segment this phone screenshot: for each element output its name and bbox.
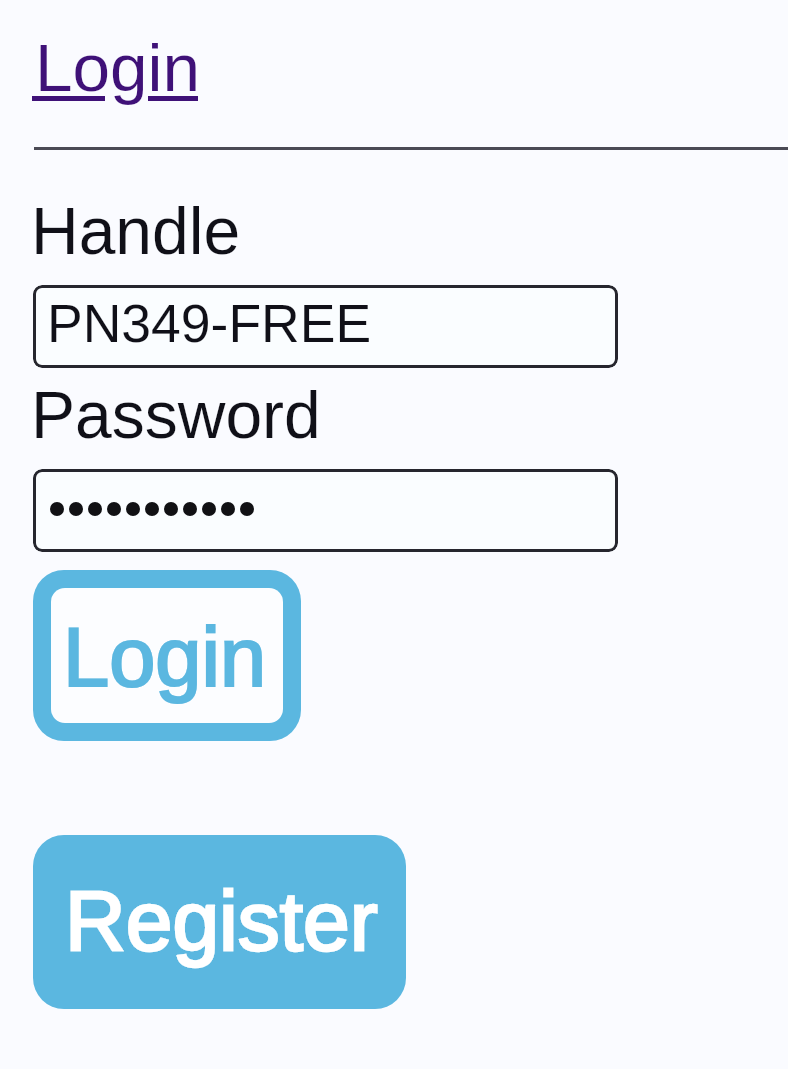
staticText: Register bbox=[65, 874, 378, 968]
button[interactable]: Register bbox=[33, 835, 406, 1009]
staticText: Login bbox=[63, 611, 267, 704]
button[interactable]: Login bbox=[33, 570, 301, 741]
staticText: Login bbox=[63, 611, 267, 704]
button[interactable]: Password, 11 characters hidden bbox=[33, 469, 618, 552]
staticText: Handle bbox=[31, 194, 241, 268]
staticText: Register bbox=[65, 874, 378, 968]
button[interactable]: PN349-FREE bbox=[33, 285, 618, 368]
staticText: PN349-FREE bbox=[47, 294, 372, 354]
staticText: Login bbox=[35, 30, 201, 105]
staticText: Password bbox=[31, 378, 321, 452]
button[interactable]: Login bbox=[32, 22, 198, 108]
